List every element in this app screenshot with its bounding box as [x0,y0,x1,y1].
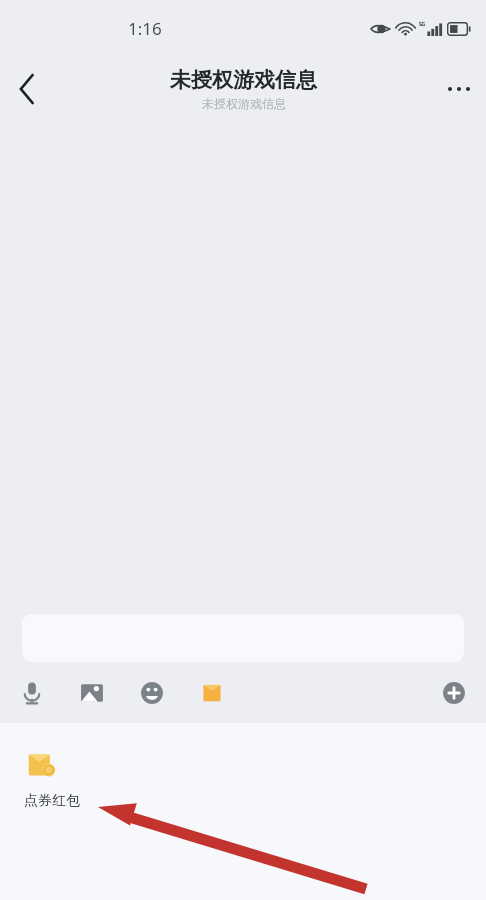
staticText: 未授权游戏信息 [170,67,317,93]
button[interactable]: Red packet [197,678,227,708]
button[interactable]: Back [0,62,54,116]
staticText: 点券红包 [24,792,80,810]
button[interactable]: More options [432,62,486,116]
button[interactable]: Send image [77,678,107,708]
button[interactable]: 点券红包 [24,749,80,810]
button[interactable]: Voice message [17,678,47,708]
staticText: 未授权游戏信息 [202,96,286,111]
button[interactable]: Emoji [137,678,167,708]
staticText: 1:16 [128,17,162,40]
button[interactable]: More functions [439,678,469,708]
